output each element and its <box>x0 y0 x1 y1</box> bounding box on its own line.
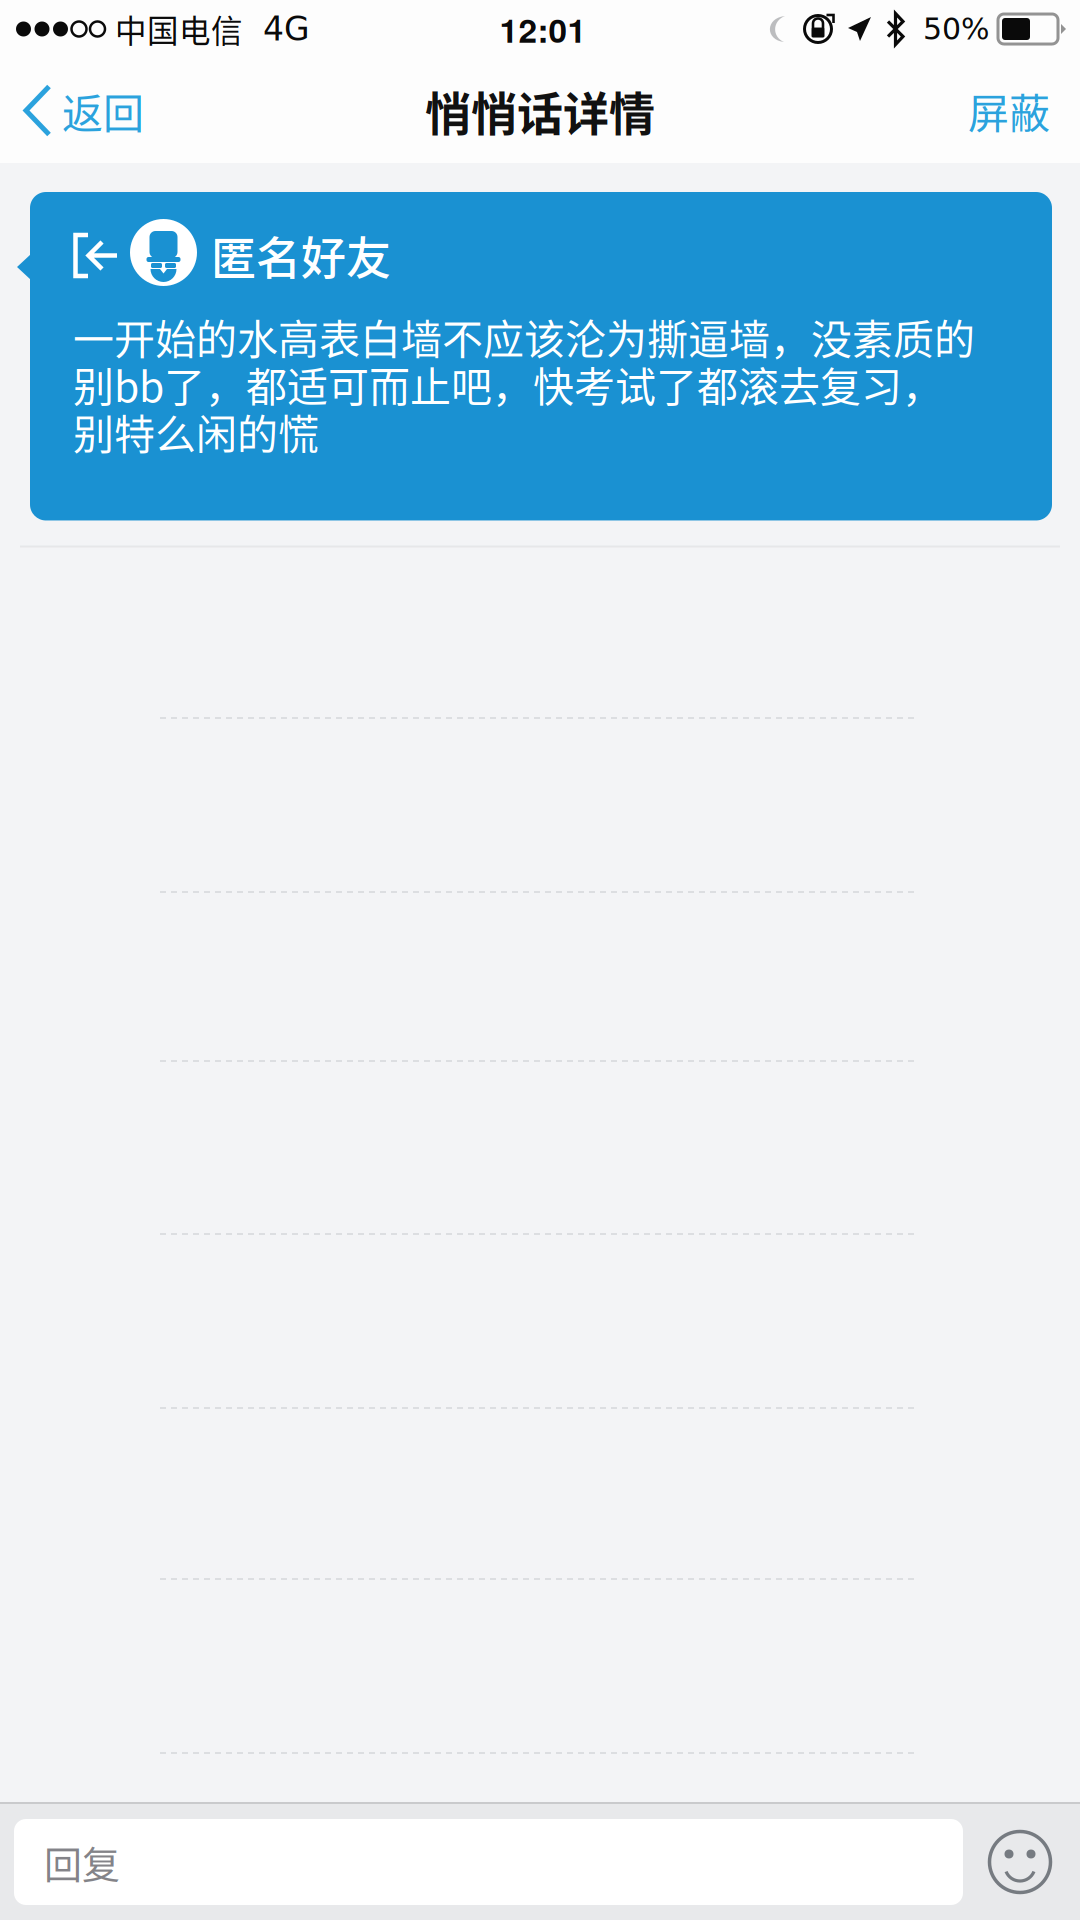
button[interactable]: 返回 <box>0 58 168 163</box>
staticText: 50% <box>923 11 990 46</box>
staticText: 返回 <box>62 81 144 140</box>
button[interactable]: 屏蔽 <box>944 58 1080 163</box>
staticText: 12:01 <box>499 5 586 53</box>
button[interactable]: 回复 <box>14 1819 963 1905</box>
staticText: 屏蔽 <box>968 81 1050 140</box>
staticText: 匿名好友 <box>211 223 391 288</box>
staticText: 中国电信 <box>115 6 243 52</box>
staticText: 回复 <box>44 1834 120 1889</box>
staticText: 一开始的水高表白墙不应该沦为撕逼墙，没素质的别bb了，都适可而止吧，快考试了都滚… <box>73 313 975 455</box>
staticText: 4G <box>263 10 310 48</box>
staticText: 悄悄话详情 <box>425 77 655 144</box>
button[interactable]: Emoji <box>963 1829 1080 1895</box>
